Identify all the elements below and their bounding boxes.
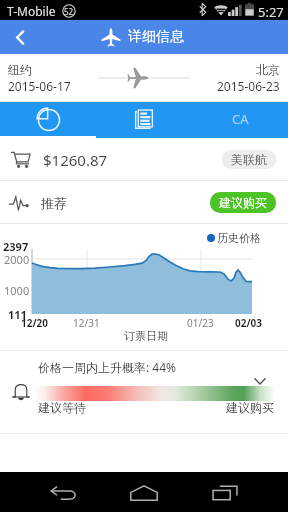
staticText: 2397 <box>3 239 29 254</box>
staticText: $1260.87 <box>43 150 108 170</box>
staticText: 建议等待 <box>38 400 86 415</box>
staticText: CA <box>232 110 249 128</box>
button[interactable]: 建议购买 <box>210 192 276 213</box>
staticText: 详细信息 <box>128 28 184 46</box>
staticText: 01/23 <box>187 316 214 330</box>
staticText: 52 <box>64 6 74 17</box>
button[interactable]: Expand <box>253 374 267 388</box>
staticText: 推荐 <box>41 195 67 211</box>
button[interactable]: Price chart tab <box>0 102 96 138</box>
staticText: 历史价格 <box>217 231 261 245</box>
staticText: T-Mobile <box>7 3 56 19</box>
staticText: 12/20 <box>21 316 49 330</box>
staticText: 价格一周内上升概率: 44% <box>38 359 177 375</box>
staticText: 2015-06-23 <box>217 78 280 94</box>
staticText: 建议购买 <box>219 195 267 210</box>
staticText: 纽约 <box>8 62 32 77</box>
staticText: 订票日期 <box>124 329 168 343</box>
staticText: 12/31 <box>73 316 100 330</box>
staticText: 美联航 <box>231 152 267 167</box>
staticText: 5:27 <box>258 3 284 21</box>
button[interactable]: Home <box>125 480 163 506</box>
staticText: 建议购买 <box>226 400 274 415</box>
staticText: 1000 <box>4 283 30 298</box>
button[interactable]: 美联航 <box>222 150 276 169</box>
button[interactable]: Recent apps <box>206 480 244 506</box>
staticText: 02/03 <box>235 316 263 330</box>
button[interactable]: CA <box>192 102 288 138</box>
button[interactable]: Back <box>44 480 82 506</box>
staticText: 111 <box>8 307 27 322</box>
staticText: 2000 <box>4 252 30 267</box>
button[interactable]: Back <box>0 20 40 54</box>
staticText: 2015-06-17 <box>8 78 71 94</box>
staticText: 北京 <box>256 62 280 77</box>
button[interactable]: Details tab <box>96 102 192 138</box>
